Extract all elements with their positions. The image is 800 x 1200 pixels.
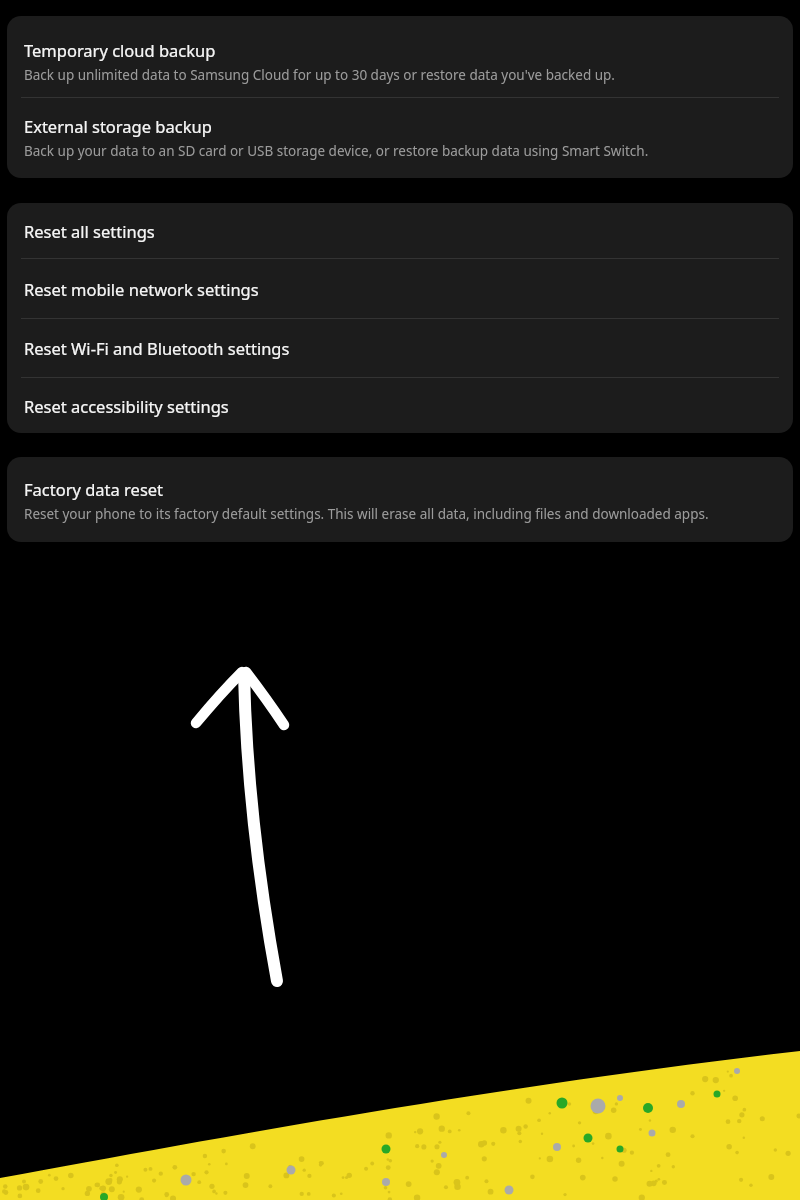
button[interactable]: External storage backup <box>7 98 793 178</box>
staticText: Back up your data to an SD card or USB s… <box>24 142 649 160</box>
staticText: Reset your phone to its factory default … <box>24 505 709 523</box>
staticText: Reset mobile network settings <box>24 278 259 300</box>
button[interactable]: Temporary cloud backup <box>7 16 793 97</box>
button[interactable]: Reset Wi-Fi and Bluetooth settings <box>7 319 793 377</box>
staticText: External storage backup <box>24 115 212 137</box>
button[interactable]: Reset accessibility settings <box>7 378 793 433</box>
button[interactable]: Factory data reset <box>7 457 793 542</box>
staticText: Temporary cloud backup <box>24 39 216 61</box>
staticText: Back up unlimited data to Samsung Cloud … <box>24 66 615 84</box>
staticText: Reset Wi-Fi and Bluetooth settings <box>24 337 290 359</box>
staticText: Reset accessibility settings <box>24 395 229 417</box>
staticText: Reset all settings <box>24 220 155 242</box>
button[interactable]: Reset mobile network settings <box>7 259 793 318</box>
staticText: Factory data reset <box>24 478 164 500</box>
button[interactable]: Reset all settings <box>7 203 793 258</box>
